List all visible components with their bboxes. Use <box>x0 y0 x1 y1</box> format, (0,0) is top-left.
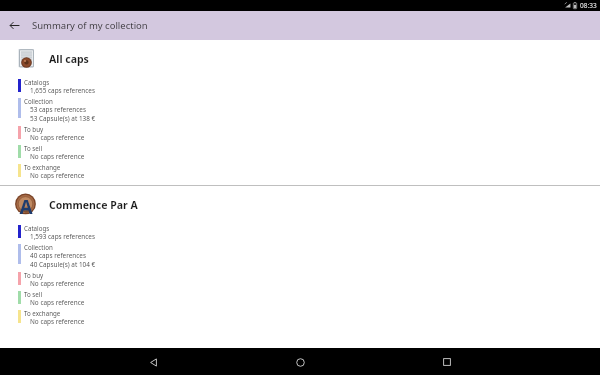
staticText: To buy <box>24 125 44 133</box>
button[interactable]: Catalogs <box>18 78 600 97</box>
staticText: 53 caps references <box>30 105 86 114</box>
staticText: To buy <box>24 271 44 279</box>
button[interactable]: To sell <box>18 290 600 309</box>
staticText: To sell <box>24 144 43 152</box>
staticText: 53 Capsule(s) at 138 € <box>30 114 96 123</box>
button[interactable]: To exchange <box>18 309 600 328</box>
button[interactable]: A <box>0 186 600 331</box>
staticText: 40 Capsule(s) at 104 € <box>30 260 96 269</box>
button[interactable]: To sell <box>18 144 600 163</box>
staticText: To exchange <box>24 309 61 317</box>
staticText: No caps reference <box>30 171 85 180</box>
button[interactable]: To exchange <box>18 163 600 182</box>
button[interactable]: To buy <box>18 125 600 144</box>
button[interactable]: Collection <box>18 97 600 125</box>
staticText: 1,655 caps references <box>30 86 96 95</box>
staticText: 08:33 <box>580 1 597 10</box>
staticText: All caps <box>49 52 89 66</box>
staticText: No caps reference <box>30 152 85 161</box>
staticText: 40 caps references <box>30 251 86 260</box>
button[interactable]: Catalogs <box>18 224 600 243</box>
staticText: To exchange <box>24 163 61 171</box>
button[interactable]: Recent apps <box>434 349 460 375</box>
button[interactable]: Collection <box>18 243 600 271</box>
button[interactable]: Home <box>287 349 313 375</box>
staticText: No caps reference <box>30 133 85 142</box>
staticText: Collection <box>24 243 53 251</box>
staticText: Collection <box>24 97 53 105</box>
button[interactable]: To buy <box>18 271 600 290</box>
staticText: 1,593 caps references <box>30 232 96 241</box>
staticText: To sell <box>24 290 43 298</box>
button[interactable]: Back <box>140 349 166 375</box>
staticText: Summary of my collection <box>32 19 148 32</box>
staticText: A <box>19 194 33 220</box>
staticText: No caps reference <box>30 317 85 326</box>
staticText: Commence Par A <box>49 198 138 212</box>
staticText: No caps reference <box>30 298 85 307</box>
button[interactable]: Back <box>0 11 29 40</box>
button[interactable]: All caps <box>0 40 600 185</box>
staticText: Catalogs <box>24 78 50 86</box>
staticText: No caps reference <box>30 279 85 288</box>
staticText: Catalogs <box>24 224 50 232</box>
